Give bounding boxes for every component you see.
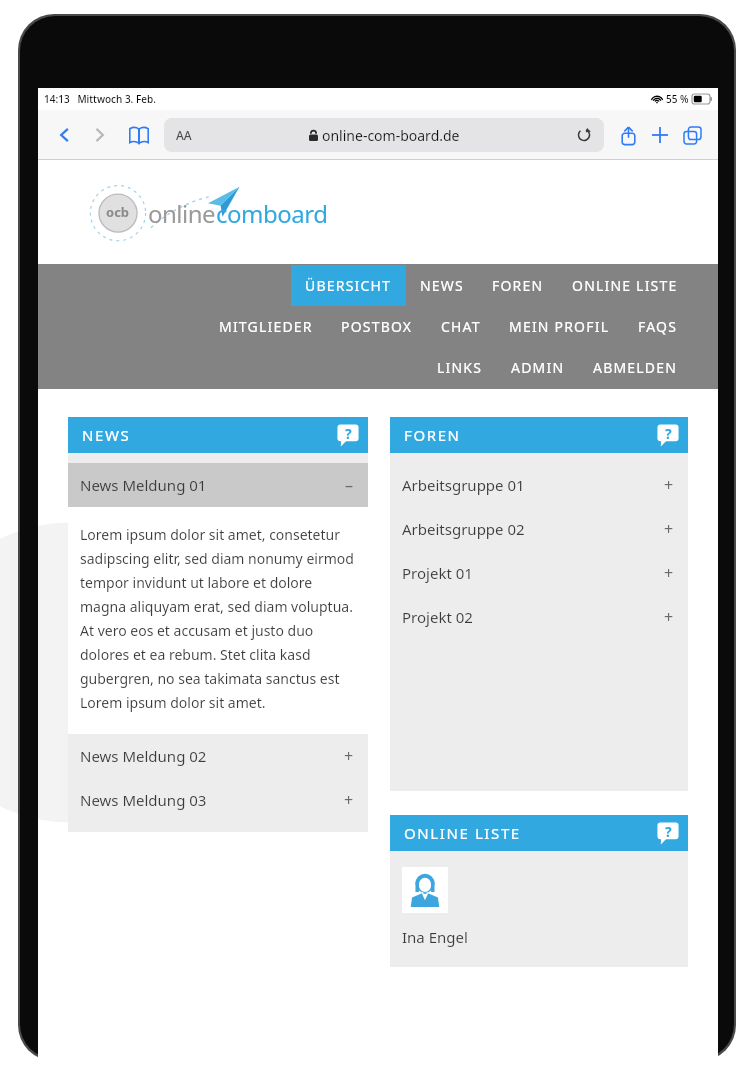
staticText: CHAT — [441, 317, 481, 336]
button[interactable]: FAQS — [624, 306, 692, 347]
button[interactable]: New tab — [644, 119, 676, 151]
staticText: ? — [665, 424, 672, 443]
button[interactable]: NEWS — [406, 265, 478, 306]
staticText: FOREN — [492, 276, 544, 295]
staticText: News Meldung 03 — [80, 790, 207, 810]
staticText: + — [344, 789, 354, 811]
staticText: ocb — [106, 203, 130, 221]
button[interactable]: Share — [612, 119, 644, 151]
staticText: ? — [665, 822, 672, 841]
button[interactable]: Help — [656, 821, 680, 845]
button[interactable]: Tabs — [676, 119, 708, 151]
staticText: NEWS — [420, 276, 464, 295]
button[interactable]: Bookmarks — [122, 118, 156, 152]
staticText: ? — [345, 424, 352, 443]
button[interactable]: CHAT — [427, 306, 495, 347]
staticText: – — [345, 474, 354, 496]
staticText: News Meldung 01 — [80, 475, 207, 495]
staticText: MITGLIEDER — [219, 317, 313, 336]
staticText: Arbeitsgruppe 01 — [402, 475, 525, 495]
staticText: ADMIN — [511, 358, 565, 377]
button[interactable]: ÜBERSICHT — [291, 265, 406, 306]
staticText: ONLINE LISTE — [404, 823, 521, 843]
button[interactable]: Help — [656, 423, 680, 447]
button[interactable]: Back — [48, 118, 82, 152]
staticText: comboard — [216, 197, 328, 230]
button[interactable]: Projekt 02 — [390, 595, 688, 639]
button[interactable]: Projekt 01 — [390, 551, 688, 595]
button[interactable]: News Meldung 02 — [68, 734, 368, 778]
button[interactable]: Reload — [574, 125, 594, 145]
staticText: FAQS — [638, 317, 678, 336]
staticText: online — [148, 197, 216, 230]
staticText: ONLINE LISTE — [572, 276, 678, 295]
staticText: News Meldung 02 — [80, 746, 207, 766]
staticText: 55 % — [666, 92, 689, 106]
staticText: MEIN PROFIL — [509, 317, 610, 336]
button[interactable]: News Meldung 01 — [68, 463, 368, 507]
button[interactable]: Ina Engel — [402, 867, 468, 947]
staticText: AA — [176, 127, 192, 143]
staticText: 14:13 Mittwoch 3. Feb. — [44, 92, 156, 106]
button[interactable]: ABMELDEN — [579, 347, 692, 388]
button[interactable]: MITGLIEDER — [205, 306, 327, 347]
staticText: + — [664, 518, 674, 540]
button[interactable]: Arbeitsgruppe 02 — [390, 507, 688, 551]
button[interactable]: ADMIN — [497, 347, 579, 388]
button[interactable]: FOREN — [478, 265, 558, 306]
staticText: LINKS — [437, 358, 483, 377]
button[interactable]: LINKS — [423, 347, 497, 388]
staticText: ÜBERSICHT — [305, 276, 392, 295]
button[interactable]: MEIN PROFIL — [495, 306, 624, 347]
staticText: + — [664, 562, 674, 584]
staticText: FOREN — [404, 425, 461, 445]
staticText: Arbeitsgruppe 02 — [402, 519, 525, 539]
staticText: POSTBOX — [341, 317, 413, 336]
staticText: + — [664, 606, 674, 628]
button[interactable]: POSTBOX — [327, 306, 427, 347]
staticText: + — [664, 474, 674, 496]
button[interactable]: ONLINE LISTE — [558, 265, 692, 306]
staticText: Ina Engel — [402, 927, 468, 947]
button[interactable]: Help — [336, 423, 360, 447]
staticText: online-com-board.de — [322, 126, 460, 145]
staticText: ABMELDEN — [593, 358, 678, 377]
button[interactable]: News Meldung 03 — [68, 778, 368, 822]
staticText: NEWS — [82, 425, 131, 445]
button[interactable]: Forward — [82, 118, 116, 152]
staticText: + — [344, 745, 354, 767]
button[interactable]: Arbeitsgruppe 01 — [390, 463, 688, 507]
button[interactable]: onlinecomboard logo — [90, 184, 328, 240]
staticText: Projekt 02 — [402, 607, 473, 627]
staticText: Lorem ipsum dolor sit amet, consetetur s… — [80, 525, 354, 712]
staticText: Projekt 01 — [402, 563, 473, 583]
button[interactable]: AA — [164, 118, 604, 152]
